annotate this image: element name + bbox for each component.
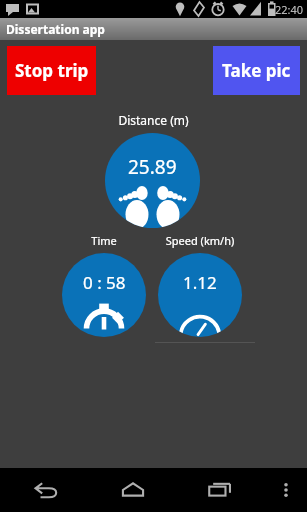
button[interactable]: More options (265, 468, 307, 512)
button[interactable]: Distance (105, 133, 200, 228)
button[interactable]: Back (0, 468, 89, 512)
staticText: Dissertation app (6, 21, 105, 37)
button[interactable]: Speed (158, 253, 242, 337)
staticText: Stop trip (15, 59, 89, 82)
staticText: Take pic (222, 59, 291, 82)
staticText: 1.12 (183, 271, 217, 294)
button[interactable]: Elapsed time (62, 253, 146, 337)
staticText: 22:40 (275, 2, 304, 17)
button[interactable]: Take pic (213, 46, 300, 95)
staticText: 25.89 (128, 154, 177, 180)
staticText: Time (62, 233, 146, 248)
staticText: Speed (km/h) (148, 233, 252, 248)
button[interactable]: Stop trip (7, 46, 96, 95)
button[interactable]: Recent apps (177, 468, 265, 512)
staticText: 0 : 58 (83, 271, 126, 294)
staticText: Distance (m) (0, 112, 307, 128)
button[interactable]: Home (89, 468, 177, 512)
